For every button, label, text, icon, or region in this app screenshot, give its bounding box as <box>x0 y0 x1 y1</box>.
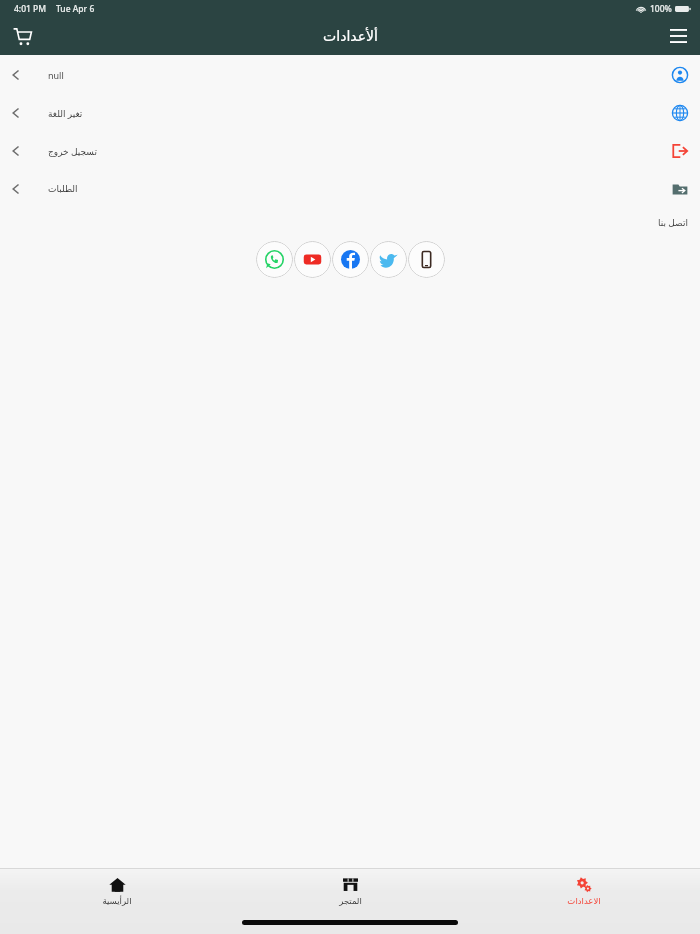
button[interactable]: تسجيل خروج <box>0 132 700 170</box>
button[interactable]: تغير اللغة <box>0 94 700 132</box>
button[interactable]: YouTube <box>294 241 331 278</box>
staticText: اتصل بنا <box>658 216 688 228</box>
button[interactable]: null <box>0 56 700 94</box>
staticText: الاعدادات <box>567 896 601 906</box>
staticText: المتجر <box>339 896 362 906</box>
staticText: null <box>48 69 64 81</box>
button[interactable]: Cart <box>0 17 44 55</box>
button[interactable]: المتجر <box>234 869 467 917</box>
staticText: الرأيسية <box>102 896 132 906</box>
button[interactable]: الرأيسية <box>0 869 234 917</box>
button[interactable]: Menu <box>656 17 700 55</box>
staticText: 4:01 PM <box>14 3 47 15</box>
staticText: تغير اللغة <box>48 107 83 119</box>
button[interactable]: Twitter <box>370 241 407 278</box>
button[interactable]: WhatsApp <box>256 241 293 278</box>
staticText: تسجيل خروج <box>48 145 97 157</box>
staticText: الطلبات <box>48 184 78 194</box>
staticText: 100% <box>650 3 672 15</box>
button[interactable]: الاعدادات <box>467 869 700 917</box>
button[interactable]: Facebook <box>332 241 369 278</box>
button[interactable]: Mobile App <box>408 241 445 278</box>
button[interactable]: الطلبات <box>0 170 700 208</box>
staticText: Tue Apr 6 <box>56 3 95 15</box>
staticText: ألأعدادات <box>323 28 378 44</box>
